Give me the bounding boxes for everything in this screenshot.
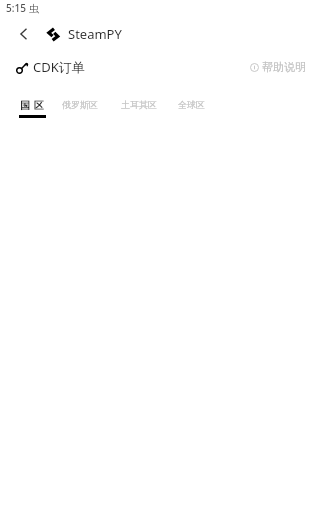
button[interactable]: 俄罗斯区 bbox=[55, 99, 105, 125]
staticText: 全球区 bbox=[178, 99, 205, 110]
button[interactable]: 土耳其区 bbox=[114, 99, 164, 125]
staticText: 国区 bbox=[18, 99, 46, 112]
staticText: 帮助说明 bbox=[262, 60, 306, 74]
staticText: 5:15 bbox=[6, 1, 26, 15]
button[interactable]: Back bbox=[0, 22, 46, 46]
button[interactable]: 全球区 bbox=[170, 99, 212, 125]
staticText: SteamPY bbox=[68, 25, 122, 43]
staticText: 土耳其区 bbox=[121, 99, 157, 110]
button[interactable]: 国区 bbox=[12, 99, 52, 125]
staticText: 俄罗斯区 bbox=[62, 99, 98, 110]
button[interactable]: 帮助说明 bbox=[249, 58, 307, 76]
staticText: 虫 bbox=[29, 2, 39, 15]
staticText: CDK订单 bbox=[33, 58, 85, 76]
